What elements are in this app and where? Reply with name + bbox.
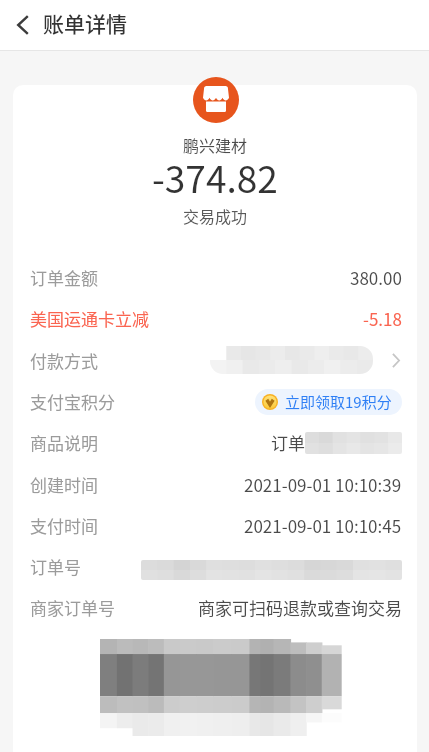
staticText: 交易成功: [183, 204, 248, 227]
button[interactable]: 订单号: [13, 546, 417, 587]
staticText: 订单号: [30, 554, 81, 579]
staticText: 2021-09-01 10:10:45: [244, 513, 402, 538]
staticText: -374.82: [152, 150, 278, 204]
staticText: 订单金额: [30, 265, 98, 290]
staticText: 付款方式: [30, 348, 98, 373]
staticText: 商家可扫码退款或查询交易: [198, 595, 402, 620]
button[interactable]: 创建时间: [13, 463, 417, 505]
button[interactable]: 付款方式: [13, 339, 417, 381]
staticText: 支付宝积分: [30, 389, 115, 414]
staticText: 创建时间: [30, 472, 98, 497]
button[interactable]: Merchant: [193, 77, 239, 123]
staticText: -5.18: [363, 306, 402, 331]
button[interactable]: 支付宝积分: [13, 381, 417, 422]
staticText: 订单: [271, 430, 305, 455]
button[interactable]: 立即领取19积分: [255, 389, 402, 415]
button[interactable]: Back: [6, 6, 40, 44]
button[interactable]: 订单金额: [13, 257, 417, 298]
staticText: 鹏兴建材: [183, 133, 248, 156]
button[interactable]: 商家订单号: [13, 587, 417, 628]
staticText: 支付时间: [30, 513, 98, 538]
staticText: 380.00: [350, 265, 402, 290]
staticText: 账单详情: [43, 8, 127, 38]
staticText: 2021-09-01 10:10:39: [244, 472, 402, 497]
staticText: 美国运通卡立减: [30, 306, 149, 331]
button[interactable]: 支付时间: [13, 505, 417, 546]
staticText: 商家订单号: [30, 595, 115, 620]
button[interactable]: 美国运通卡立减: [13, 298, 417, 339]
staticText: 商品说明: [30, 430, 98, 455]
staticText: 立即领取19积分: [285, 391, 392, 413]
button[interactable]: 商品说明: [13, 422, 417, 463]
